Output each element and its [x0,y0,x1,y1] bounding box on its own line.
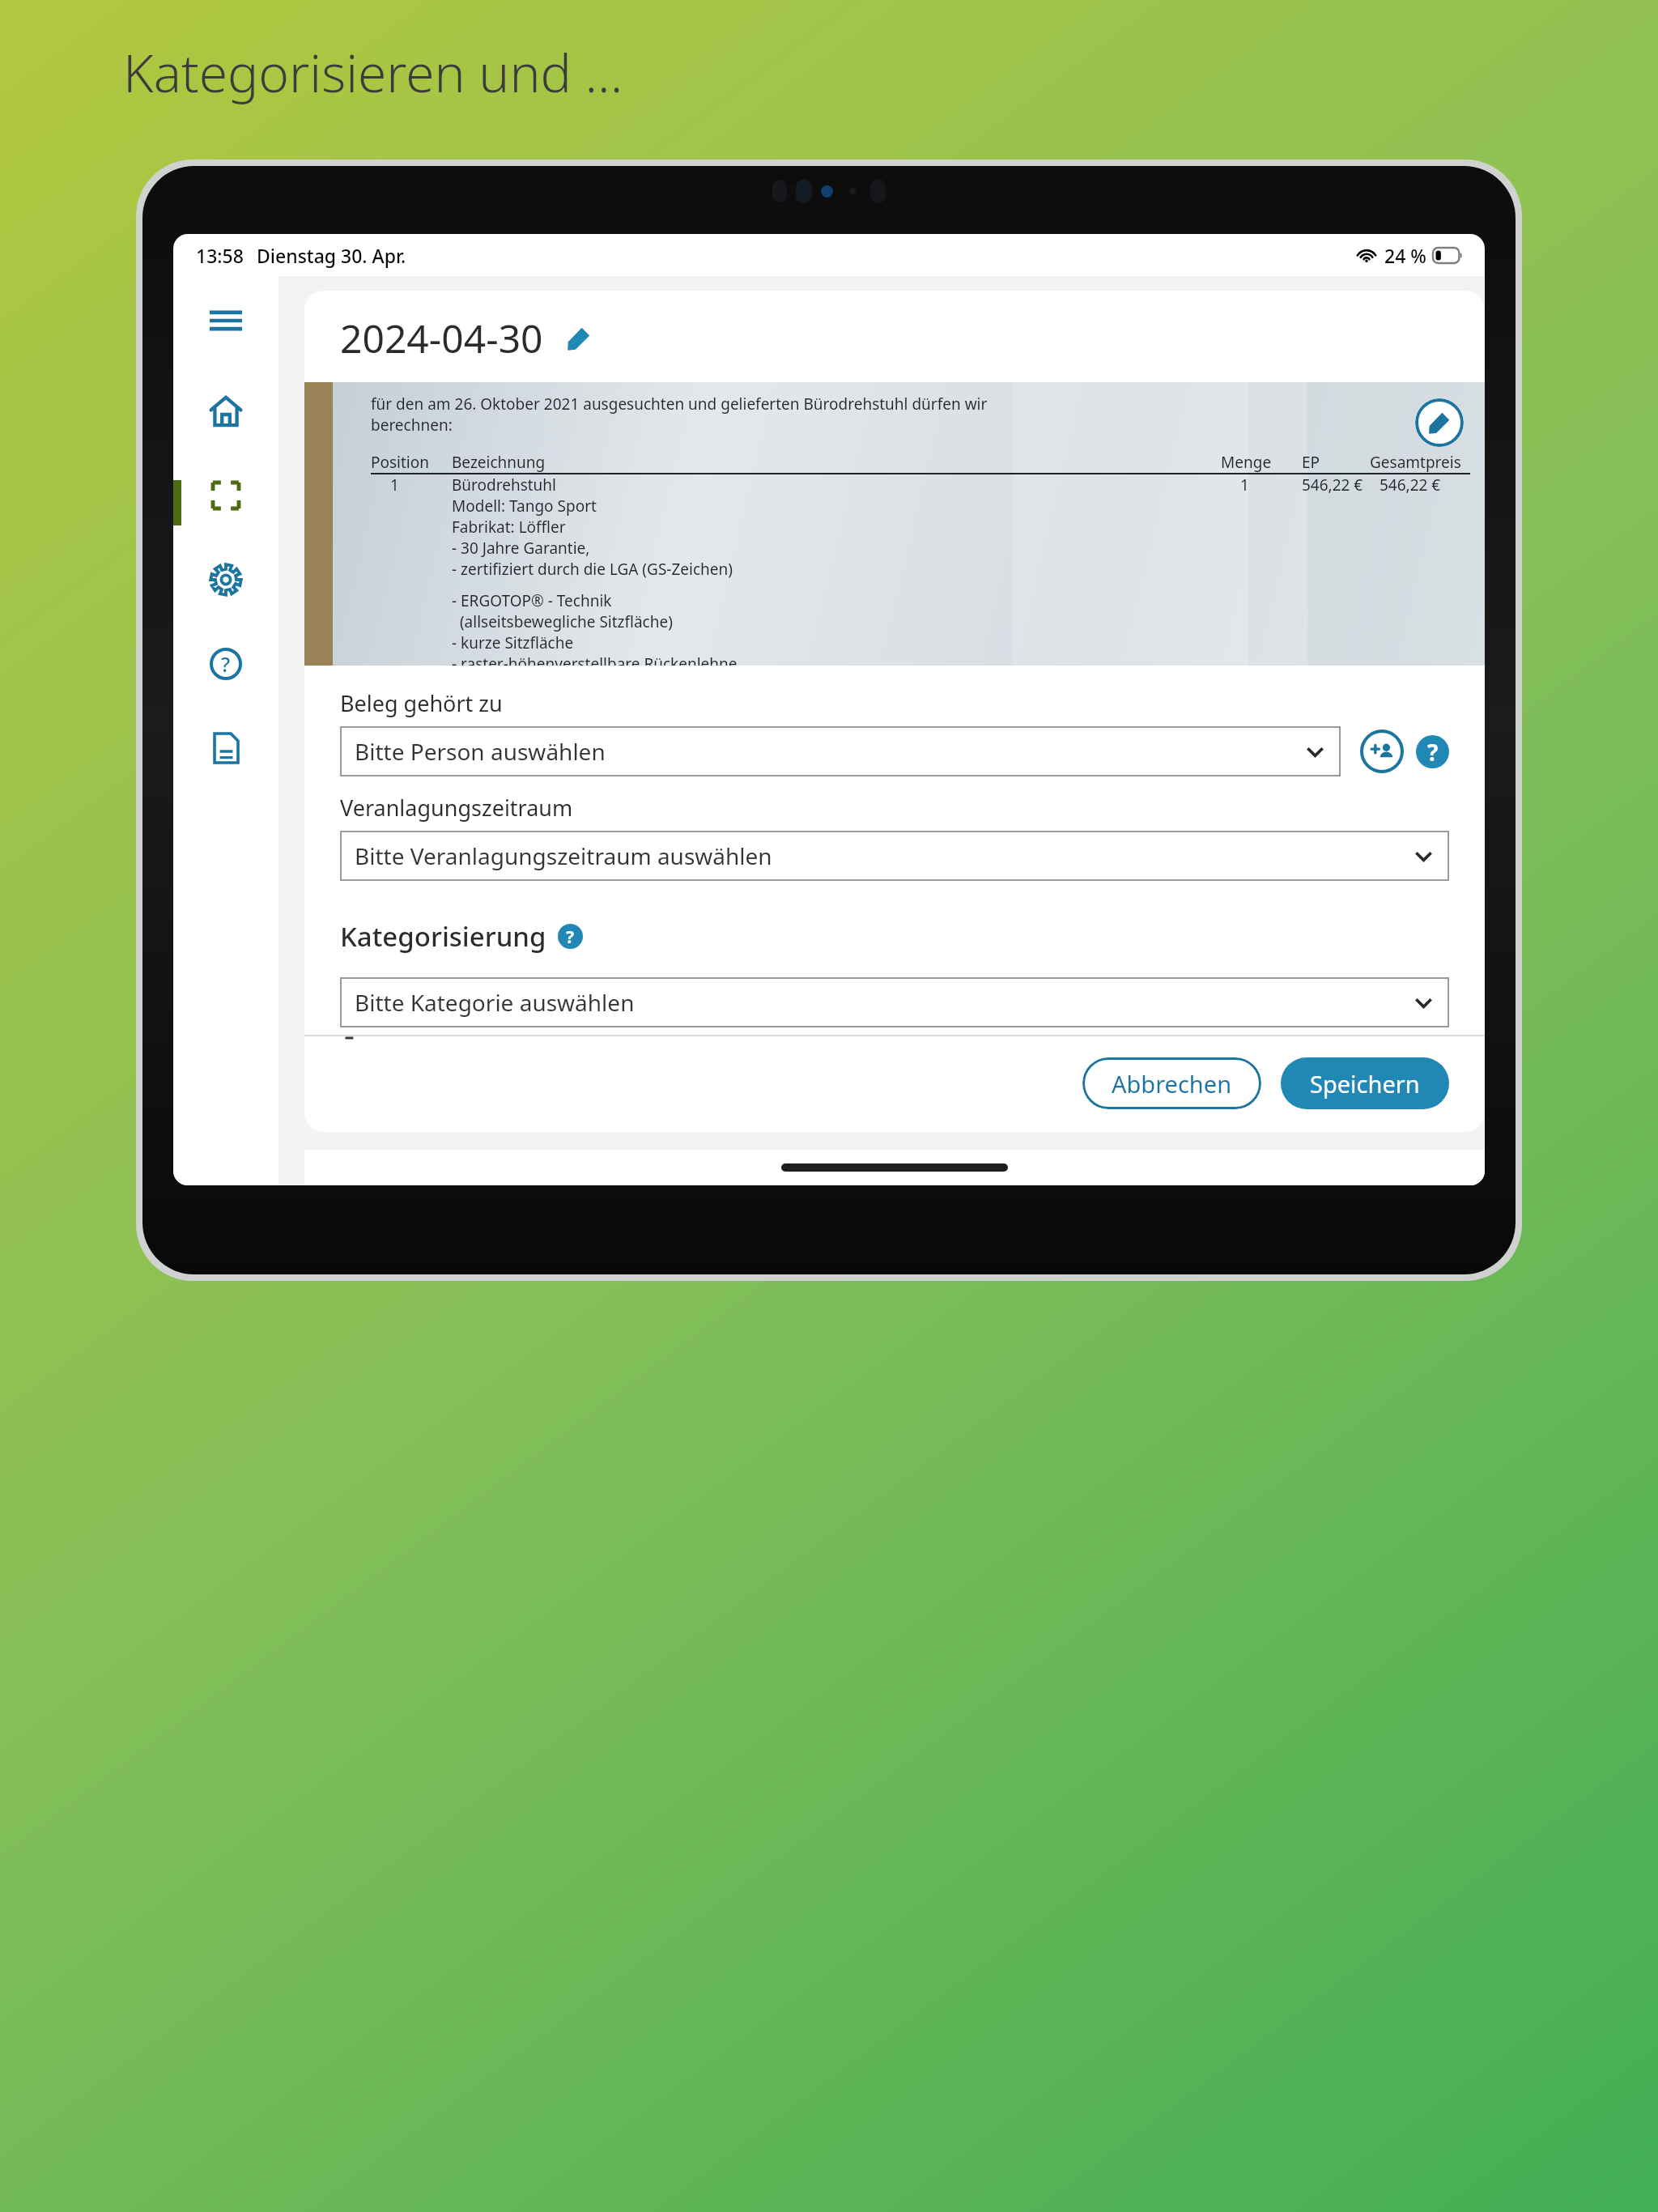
button[interactable]: Menü [199,294,253,347]
staticText: Fabrikat: Löffler [452,517,566,538]
staticText: EP [1302,452,1370,473]
staticText: Bezeichnung [452,452,1221,473]
button[interactable]: Hilfe [558,924,583,949]
staticText: Position [371,452,452,473]
staticText: Dienstag 30. Apr. [257,243,406,268]
staticText: Bitte Person auswählen [355,736,1304,767]
staticText: ? [566,925,575,948]
staticText: 546,22 € [1380,474,1470,496]
staticText: 2024-04-30 [340,312,543,364]
button[interactable]: Abbrechen [1082,1057,1261,1109]
staticText: Menge [1221,452,1302,473]
staticText: 1 [390,474,452,496]
staticText: ? [221,650,231,678]
staticText: (allseitsbewegliche Sitzfläche) [452,611,673,632]
staticText: - kurze Sitzfläche [452,632,574,653]
staticText: Modell: Tango Sport [452,496,597,517]
staticText: Veranlagungszeitraum [340,793,573,823]
button[interactable]: Beleg bearbeiten [1415,398,1464,447]
button[interactable]: Start [199,385,253,438]
button[interactable]: Speichern [1281,1057,1449,1109]
button[interactable]: Person hinzufügen [1360,730,1404,773]
button[interactable]: Hilfe [199,637,253,691]
button[interactable]: Einstellungen [199,553,253,606]
button[interactable]: Bitte Person auswählen [340,726,1341,776]
staticText: Speichern [1310,1068,1420,1100]
button[interactable]: Datum bearbeiten [563,322,595,355]
staticText: - ERGOTOP® - Technik [452,590,612,611]
button[interactable]: Hilfe [1416,735,1449,768]
staticText: Kategorisieren und ... [123,37,623,108]
staticText: Gesamtpreis [1370,452,1470,473]
button[interactable]: Bitte Veranlagungszeitraum auswählen [340,831,1449,881]
staticText: Abbrechen [1112,1068,1232,1100]
button[interactable]: Dokumente [199,721,253,775]
staticText: Kategorisierung [340,918,546,955]
staticText: berechnen: [371,415,453,436]
button[interactable]: Scannen [199,469,253,522]
staticText: 13:58 [196,243,244,268]
staticText: ? [1427,737,1439,768]
staticText: 24 % [1384,243,1426,268]
staticText: 546,22 € [1302,474,1370,496]
staticText: Bitte Veranlagungszeitraum auswählen [355,840,1413,871]
button[interactable]: Bitte Kategorie auswählen [340,977,1449,1027]
staticText: für den am 26. Oktober 2021 ausgesuchten… [371,393,988,415]
staticText: 1 [1240,474,1302,496]
staticText: Bitte Kategorie auswählen [355,987,1413,1018]
staticText: - 30 Jahre Garantie, [452,538,590,559]
staticText: - zertifiziert durch die LGA (GS-Zeichen… [452,559,733,580]
staticText: Beleg gehört zu [340,688,503,718]
staticText: Bürodrehstuhl [452,474,1221,496]
staticText: - raster-höhenverstellbare Rückenlehne [452,653,738,666]
